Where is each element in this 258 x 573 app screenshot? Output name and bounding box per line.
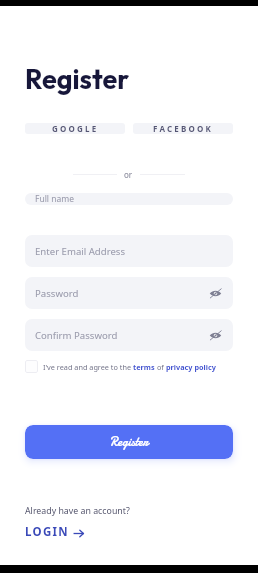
- staticText: I've read and agree to the: [43, 362, 133, 372]
- button[interactable]: I've read and agree to the: [25, 360, 233, 373]
- button[interactable]: Full name: [25, 193, 233, 205]
- button[interactable]: GOOGLE: [25, 123, 125, 134]
- staticText: Password: [35, 287, 79, 300]
- staticText: LOGIN: [25, 524, 69, 540]
- button[interactable]: Show password: [207, 327, 223, 343]
- staticText: Register: [110, 433, 149, 451]
- button[interactable]: Register: [25, 425, 233, 459]
- button[interactable]: FACEBOOK: [133, 123, 233, 134]
- staticText: or: [124, 169, 133, 180]
- staticText: Confirm Password: [35, 329, 118, 342]
- staticText: terms: [133, 362, 155, 372]
- button[interactable]: Show password: [207, 285, 223, 301]
- staticText: Already have an account?: [25, 505, 130, 517]
- staticText: Enter Email Address: [35, 245, 126, 258]
- staticText: Full name: [35, 193, 75, 205]
- staticText: FACEBOOK: [153, 123, 214, 134]
- staticText: Register: [25, 62, 130, 96]
- button[interactable]: Password: [25, 277, 233, 309]
- button[interactable]: LOGIN: [25, 524, 84, 540]
- button[interactable]: Enter Email Address: [25, 235, 233, 267]
- button[interactable]: Confirm Password: [25, 319, 233, 351]
- staticText: of: [155, 362, 166, 372]
- staticText: privacy policy: [166, 362, 216, 372]
- staticText: GOOGLE: [52, 123, 99, 134]
